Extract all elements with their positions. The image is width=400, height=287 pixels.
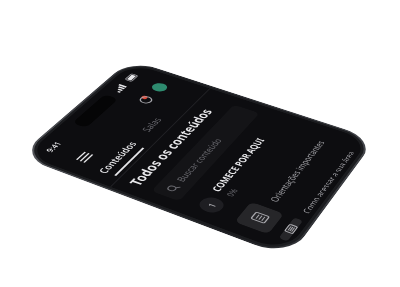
staticText: Buscar conteúdo xyxy=(173,137,225,183)
staticText: 1 xyxy=(204,201,219,209)
button[interactable]: Profile xyxy=(141,77,178,97)
staticText: Como acessar a sua área para estudar xyxy=(299,143,359,214)
button[interactable]: Buscar conteúdo xyxy=(151,104,260,201)
button[interactable]: Conteúdos xyxy=(95,129,161,179)
staticText: COMECE POR AQUI xyxy=(208,136,267,193)
staticText: Todos os conteúdos xyxy=(124,106,216,188)
staticText: Orientações importantes xyxy=(267,133,333,204)
button[interactable]: Como acessar a sua área para estudar xyxy=(266,134,369,252)
button[interactable]: 1 xyxy=(183,110,305,226)
button[interactable]: Notifications xyxy=(127,90,164,110)
staticText: 0% xyxy=(224,187,241,198)
staticText: Conteúdos xyxy=(95,140,140,175)
button[interactable]: Menu xyxy=(64,146,104,169)
staticText: 9:41 xyxy=(43,140,63,153)
staticText: Salas xyxy=(138,116,165,133)
button[interactable]: Salas xyxy=(138,116,168,135)
button[interactable]: Orientações importantes xyxy=(222,121,352,245)
